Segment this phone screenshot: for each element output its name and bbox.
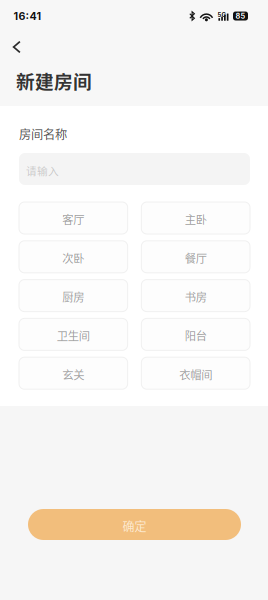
button[interactable]: 阳台 [141, 318, 250, 350]
button[interactable]: 次卧 [19, 241, 128, 273]
button[interactable]: 厨房 [19, 280, 128, 312]
button[interactable]: 卫生间 [19, 318, 128, 350]
staticText: 85 [235, 12, 245, 20]
staticText: 新建房间 [16, 67, 92, 94]
staticText: 书房 [185, 288, 207, 305]
staticText: 16:41 [13, 9, 41, 22]
staticText: 主卧 [185, 211, 207, 227]
button[interactable]: 餐厅 [141, 241, 250, 273]
staticText: 确定 [122, 517, 146, 535]
button[interactable]: 玄关 [19, 357, 128, 389]
staticText: 餐厅 [185, 250, 207, 266]
staticText: 房间名称 [19, 125, 67, 143]
button[interactable]: 衣帽间 [141, 357, 250, 389]
button[interactable]: 客厅 [19, 202, 128, 234]
button[interactable]: Back [12, 35, 40, 59]
staticText: 玄关 [62, 366, 84, 382]
staticText: 次卧 [62, 250, 84, 266]
button[interactable]: 请输入 [19, 153, 250, 185]
staticText: 衣帽间 [179, 366, 212, 382]
button[interactable]: 书房 [141, 280, 250, 312]
staticText: 客厅 [62, 211, 84, 227]
button[interactable]: 确定 [28, 509, 241, 540]
button[interactable]: 主卧 [141, 202, 250, 234]
staticText: 5G [217, 11, 226, 18]
staticText: 阳台 [185, 327, 207, 344]
staticText: 请输入 [26, 163, 59, 178]
staticText: 厨房 [62, 288, 84, 305]
staticText: 卫生间 [57, 327, 90, 344]
